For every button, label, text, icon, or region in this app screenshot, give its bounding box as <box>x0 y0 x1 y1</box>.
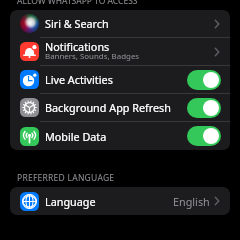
button[interactable]: Mobile Data <box>10 122 230 150</box>
button[interactable]: Toggle Live Activities <box>187 70 221 90</box>
staticText: Siri & Search <box>45 16 109 31</box>
staticText: Background App Refresh <box>45 100 171 115</box>
staticText: Mobile Data <box>45 129 107 144</box>
button[interactable]: Live Activities <box>10 66 230 93</box>
staticText: Notifications <box>45 39 110 54</box>
button[interactable]: Toggle Mobile Data <box>187 126 221 146</box>
button[interactable]: Notifications <box>10 38 230 65</box>
staticText: Language <box>45 194 96 209</box>
button[interactable]: Siri & Search <box>10 10 230 37</box>
staticText: Live Activities <box>45 72 113 87</box>
staticText: PREFERRED LANGUAGE <box>17 172 115 184</box>
staticText: Banners, Sounds, Badges <box>45 51 140 62</box>
staticText: ALLOW WHATSAPP TO ACCESS <box>17 0 138 5</box>
button[interactable]: Toggle Background App Refresh <box>187 98 221 118</box>
button[interactable]: Language <box>10 187 230 215</box>
staticText: English <box>173 194 210 209</box>
button[interactable]: Background App Refresh <box>10 94 230 121</box>
